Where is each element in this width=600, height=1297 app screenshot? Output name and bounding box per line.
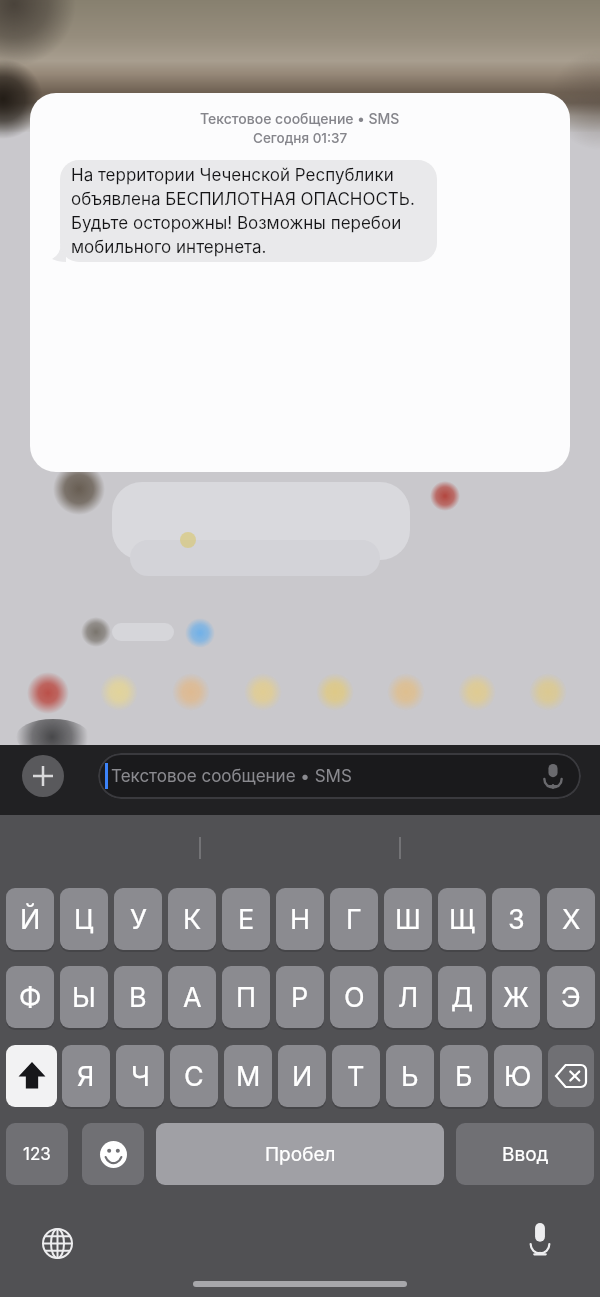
- staticText: Ж: [503, 981, 529, 1014]
- button[interactable]: У: [114, 888, 162, 950]
- button[interactable]: [548, 1045, 594, 1107]
- staticText: Д: [451, 981, 474, 1014]
- staticText: Е: [238, 903, 255, 936]
- staticText: У: [130, 903, 147, 936]
- button[interactable]: Текстовое сообщение • SMS: [30, 93, 570, 472]
- button[interactable]: М: [224, 1045, 272, 1107]
- button[interactable]: Э: [547, 966, 595, 1028]
- staticText: Ф: [19, 981, 42, 1014]
- button[interactable]: [520, 1220, 560, 1260]
- staticText: Й: [20, 903, 41, 936]
- button[interactable]: Ы: [60, 966, 108, 1028]
- button[interactable]: И: [278, 1045, 326, 1107]
- button[interactable]: Ф: [6, 966, 54, 1028]
- staticText: Ввод: [502, 1143, 549, 1166]
- staticText: Я: [77, 1060, 95, 1093]
- button[interactable]: Р: [276, 966, 324, 1028]
- button[interactable]: В: [114, 966, 162, 1028]
- staticText: М: [236, 1060, 261, 1093]
- button[interactable]: Ю: [494, 1045, 542, 1107]
- staticText: Г: [346, 903, 362, 936]
- staticText: О: [344, 981, 365, 1014]
- staticText: Ц: [74, 903, 94, 936]
- button[interactable]: Д: [438, 966, 486, 1028]
- staticText: Щ: [449, 903, 476, 936]
- staticText: Ч: [131, 1060, 150, 1093]
- staticText: Б: [455, 1060, 473, 1093]
- button[interactable]: Ш: [384, 888, 432, 950]
- staticText: Л: [398, 981, 419, 1014]
- staticText: П: [236, 981, 257, 1014]
- staticText: А: [183, 981, 202, 1014]
- button[interactable]: Пробел: [156, 1123, 444, 1185]
- staticText: Т: [347, 1060, 365, 1093]
- button[interactable]: К: [168, 888, 216, 950]
- staticText: Ы: [72, 981, 96, 1014]
- button[interactable]: Ж: [492, 966, 540, 1028]
- button[interactable]: Х: [547, 888, 595, 950]
- staticText: На территории Чеченской Республики объяв…: [71, 165, 415, 257]
- button[interactable]: [37, 1223, 77, 1263]
- staticText: Р: [291, 981, 309, 1014]
- button[interactable]: Ч: [116, 1045, 164, 1107]
- button[interactable]: Б: [440, 1045, 488, 1107]
- staticText: Текстовое сообщение • SMS: [200, 110, 400, 127]
- staticText: Пробел: [265, 1143, 336, 1166]
- button[interactable]: Г: [330, 888, 378, 950]
- staticText: З: [508, 903, 525, 936]
- button[interactable]: Л: [384, 966, 432, 1028]
- button[interactable]: [22, 755, 64, 797]
- staticText: Ь: [401, 1060, 419, 1093]
- button[interactable]: [82, 1123, 144, 1185]
- button[interactable]: 123: [6, 1123, 68, 1185]
- button[interactable]: Й: [6, 888, 54, 950]
- staticText: С: [184, 1060, 204, 1093]
- button[interactable]: О: [330, 966, 378, 1028]
- button[interactable]: Т: [332, 1045, 380, 1107]
- staticText: Н: [290, 903, 311, 936]
- staticText: Ш: [395, 903, 421, 936]
- button[interactable]: Е: [222, 888, 270, 950]
- button[interactable]: Ц: [60, 888, 108, 950]
- button[interactable]: Я: [62, 1045, 110, 1107]
- button[interactable]: П: [222, 966, 270, 1028]
- staticText: Х: [562, 903, 581, 936]
- staticText: К: [183, 903, 202, 936]
- staticText: Ю: [504, 1060, 532, 1093]
- staticText: В: [129, 981, 147, 1014]
- staticText: Текстовое сообщение • SMS: [111, 766, 352, 787]
- button[interactable]: З: [492, 888, 540, 950]
- staticText: Э: [561, 981, 581, 1014]
- button[interactable]: Ввод: [456, 1123, 594, 1185]
- button[interactable]: Текстовое сообщение • SMS: [98, 753, 581, 799]
- button[interactable]: С: [170, 1045, 218, 1107]
- button[interactable]: Щ: [438, 888, 486, 950]
- staticText: И: [292, 1060, 313, 1093]
- staticText: 123: [23, 1144, 51, 1165]
- staticText: Сегодня 01:37: [253, 130, 348, 146]
- button[interactable]: Ь: [386, 1045, 434, 1107]
- button[interactable]: Н: [276, 888, 324, 950]
- button[interactable]: [6, 1045, 57, 1107]
- button[interactable]: А: [168, 966, 216, 1028]
